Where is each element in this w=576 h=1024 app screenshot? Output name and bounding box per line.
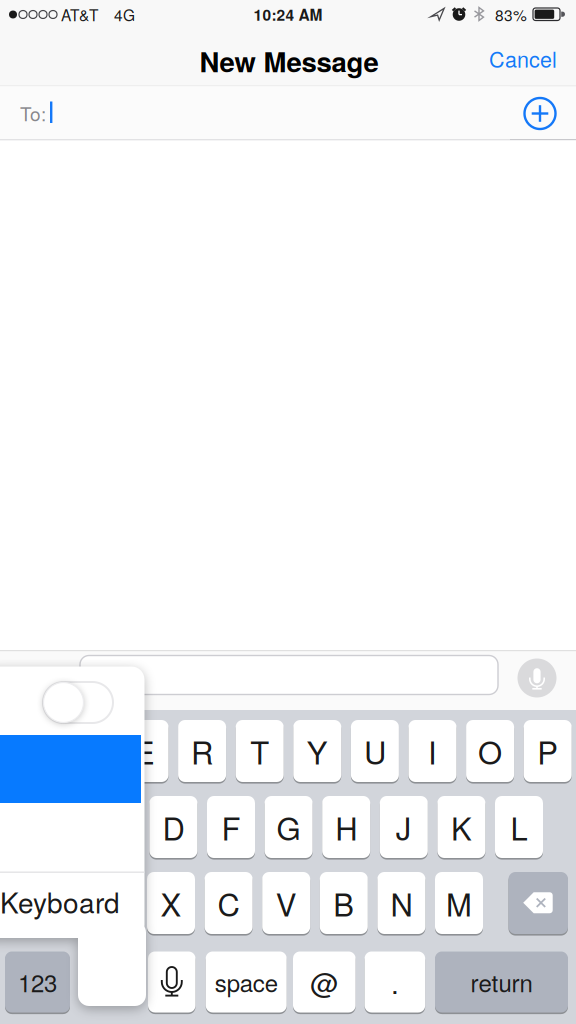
button[interactable]: Keyboard	[0, 872, 144, 937]
button[interactable]: R	[178, 720, 226, 782]
staticText: space	[215, 965, 278, 999]
button[interactable]: K	[437, 796, 485, 858]
staticText: R	[191, 729, 213, 773]
staticText: Cancel	[489, 43, 557, 73]
button[interactable]: Add Contact	[524, 98, 555, 129]
staticText: H	[335, 805, 357, 849]
button[interactable]: F	[207, 796, 255, 858]
button[interactable]: D	[149, 796, 197, 858]
staticText: 123	[18, 965, 57, 999]
staticText: Q	[17, 729, 41, 773]
staticText: E	[134, 729, 155, 773]
button[interactable]: H	[322, 796, 370, 858]
staticText: Keyboard	[0, 882, 120, 921]
staticText: Y	[307, 729, 328, 773]
button[interactable]: B	[320, 872, 368, 934]
button[interactable]: W	[63, 720, 111, 782]
button[interactable]: T	[236, 720, 284, 782]
button[interactable]: G	[265, 796, 313, 858]
staticText: J	[396, 805, 412, 849]
button[interactable]: O	[466, 720, 514, 782]
staticText: return	[470, 965, 532, 999]
button[interactable]: Cancel	[407, 40, 557, 77]
staticText: G	[277, 805, 301, 849]
button[interactable]: .	[365, 951, 425, 1012]
button[interactable]: S	[92, 796, 140, 858]
staticText: X	[160, 881, 181, 925]
button[interactable]: I	[408, 720, 456, 782]
button[interactable]: space	[206, 951, 287, 1012]
staticText: 83%	[495, 4, 527, 25]
button[interactable]: Z	[89, 872, 137, 934]
staticText: F	[221, 805, 240, 849]
staticText: P	[537, 729, 558, 773]
button[interactable]: Dictation	[148, 951, 195, 1012]
staticText: M	[446, 881, 472, 925]
staticText: W	[72, 729, 101, 773]
button[interactable]: M	[435, 872, 483, 934]
staticText: .	[391, 962, 399, 1002]
button[interactable]: J	[380, 796, 428, 858]
staticText: Z	[104, 881, 123, 925]
button[interactable]: @	[293, 951, 356, 1012]
button[interactable]: Dictate	[517, 658, 556, 697]
staticText: O	[478, 729, 502, 773]
button[interactable]: return	[435, 951, 568, 1012]
staticText: C	[218, 881, 240, 925]
staticText: T	[250, 729, 269, 773]
button[interactable]: Predictive	[43, 682, 113, 723]
button[interactable]: Message	[80, 655, 498, 694]
button[interactable]: L	[495, 796, 543, 858]
button[interactable]: 123	[5, 951, 70, 1012]
staticText: V	[276, 881, 297, 925]
staticText: B	[333, 881, 354, 925]
button[interactable]: Delete	[508, 872, 568, 934]
button[interactable]: Q	[5, 720, 53, 782]
staticText: I	[428, 729, 437, 773]
button[interactable]: X	[147, 872, 195, 934]
staticText: 4G	[114, 4, 135, 25]
staticText: AT&T	[61, 4, 98, 25]
staticText: To:	[20, 100, 46, 126]
button[interactable]: A	[34, 796, 82, 858]
button[interactable]: V	[262, 872, 310, 934]
button[interactable]: To	[0, 86, 510, 139]
button[interactable]: N	[377, 872, 425, 934]
staticText: New Message	[199, 42, 378, 80]
staticText: @	[310, 962, 338, 1002]
staticText: 10:24 AM	[253, 4, 322, 25]
staticText: U	[364, 729, 386, 773]
button[interactable]: Y	[293, 720, 341, 782]
staticText: D	[162, 805, 184, 849]
button[interactable]: E	[120, 720, 168, 782]
button[interactable]: U	[351, 720, 399, 782]
staticText: L	[510, 805, 527, 849]
staticText: N	[390, 881, 412, 925]
staticText: K	[451, 805, 472, 849]
button[interactable]: C	[205, 872, 253, 934]
button[interactable]: P	[524, 720, 572, 782]
